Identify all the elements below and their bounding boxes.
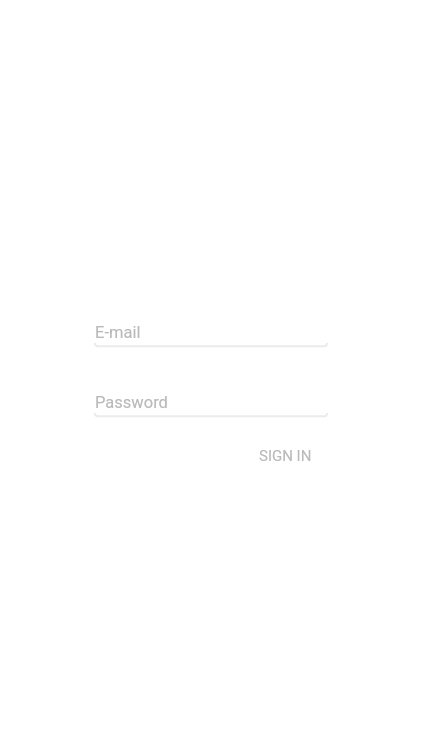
staticText: Password (95, 393, 168, 412)
button[interactable]: Password (94, 385, 328, 417)
staticText: SIGN IN (259, 447, 312, 465)
button[interactable]: SIGN IN (254, 439, 316, 473)
button[interactable]: E-mail (94, 315, 328, 347)
staticText: E-mail (95, 323, 141, 342)
